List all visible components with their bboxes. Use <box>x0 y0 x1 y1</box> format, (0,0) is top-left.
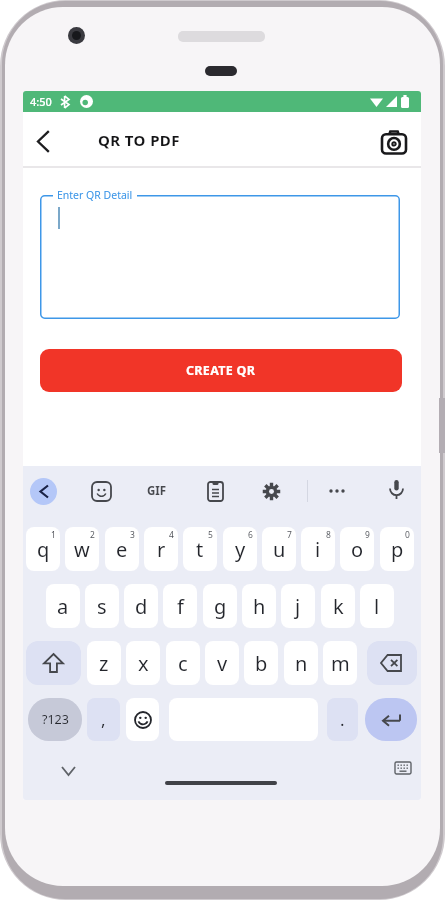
staticText: t <box>196 536 204 563</box>
button[interactable]: s <box>85 584 119 628</box>
staticText: f <box>177 593 184 620</box>
button[interactable]: y <box>223 527 257 571</box>
staticText: Enter QR Detail <box>57 188 133 202</box>
button[interactable] <box>26 641 81 685</box>
button[interactable] <box>367 641 417 685</box>
staticText: b <box>255 650 268 677</box>
staticText: j <box>295 593 301 620</box>
staticText: 7 <box>287 529 292 541</box>
button[interactable] <box>27 125 59 157</box>
staticText: k <box>333 593 344 620</box>
staticText: l <box>374 593 380 620</box>
staticText: r <box>157 536 166 563</box>
staticText: 8 <box>326 529 331 541</box>
button[interactable]: o <box>340 527 374 571</box>
staticText: CREATE QR <box>186 362 256 379</box>
staticText: d <box>135 593 148 620</box>
button[interactable]: e <box>105 527 139 571</box>
button[interactable] <box>391 759 415 777</box>
staticText: 4:50 <box>30 94 52 109</box>
button[interactable]: x <box>126 641 160 685</box>
staticText: u <box>273 536 286 563</box>
staticText: p <box>391 536 404 563</box>
button[interactable]: f <box>163 584 197 628</box>
button[interactable] <box>55 762 81 780</box>
staticText: m <box>331 650 350 677</box>
staticText: 3 <box>130 529 135 541</box>
button[interactable] <box>90 480 112 502</box>
button[interactable]: p <box>380 527 414 571</box>
button[interactable]: g <box>203 584 237 628</box>
button[interactable] <box>40 195 400 319</box>
button[interactable]: w <box>65 527 99 571</box>
staticText: ?123 <box>42 711 69 728</box>
button[interactable]: c <box>166 641 200 685</box>
button[interactable] <box>385 478 407 500</box>
button[interactable] <box>204 480 226 502</box>
button[interactable] <box>325 480 349 502</box>
button[interactable]: ?123 <box>28 698 82 741</box>
staticText: 5 <box>208 529 213 541</box>
staticText: o <box>351 536 364 563</box>
staticText: QR TO PDF <box>98 130 180 150</box>
button[interactable]: q <box>26 527 60 571</box>
staticText: e <box>116 536 128 563</box>
staticText: q <box>37 536 50 563</box>
button[interactable]: . <box>327 698 358 741</box>
button[interactable]: m <box>323 641 357 685</box>
button[interactable]: u <box>262 527 296 571</box>
staticText: 1 <box>51 529 56 541</box>
button[interactable]: n <box>284 641 318 685</box>
button[interactable] <box>260 480 282 502</box>
staticText: n <box>295 650 308 677</box>
staticText: a <box>57 593 69 620</box>
button[interactable]: CREATE QR <box>40 349 402 392</box>
staticText: x <box>138 650 149 677</box>
staticText: w <box>74 536 90 563</box>
button[interactable] <box>365 698 417 741</box>
button[interactable]: l <box>360 584 394 628</box>
staticText: s <box>97 593 107 620</box>
button[interactable]: r <box>144 527 178 571</box>
button[interactable]: i <box>301 527 335 571</box>
button[interactable]: GIF <box>147 483 167 499</box>
button[interactable]: t <box>183 527 217 571</box>
button[interactable]: h <box>242 584 276 628</box>
staticText: . <box>340 708 345 731</box>
staticText: 4 <box>169 529 174 541</box>
button[interactable]: d <box>124 584 158 628</box>
staticText: g <box>214 593 227 620</box>
button[interactable]: j <box>281 584 315 628</box>
button[interactable]: , <box>87 698 120 741</box>
button[interactable] <box>30 478 57 505</box>
button[interactable] <box>378 126 409 157</box>
staticText: 6 <box>248 529 253 541</box>
staticText: c <box>178 650 188 677</box>
staticText: z <box>99 650 109 677</box>
button[interactable]: a <box>46 584 80 628</box>
staticText: h <box>253 593 266 620</box>
staticText: GIF <box>147 483 167 499</box>
staticText: 2 <box>90 529 95 541</box>
button[interactable]: z <box>87 641 121 685</box>
staticText: 0 <box>405 529 410 541</box>
staticText: y <box>235 536 246 563</box>
staticText: v <box>217 650 228 677</box>
button[interactable]: k <box>321 584 355 628</box>
button[interactable] <box>126 698 159 741</box>
button[interactable]: b <box>244 641 278 685</box>
staticText: , <box>101 708 106 731</box>
staticText: i <box>315 536 321 563</box>
button[interactable]: v <box>205 641 239 685</box>
staticText: 9 <box>365 529 370 541</box>
